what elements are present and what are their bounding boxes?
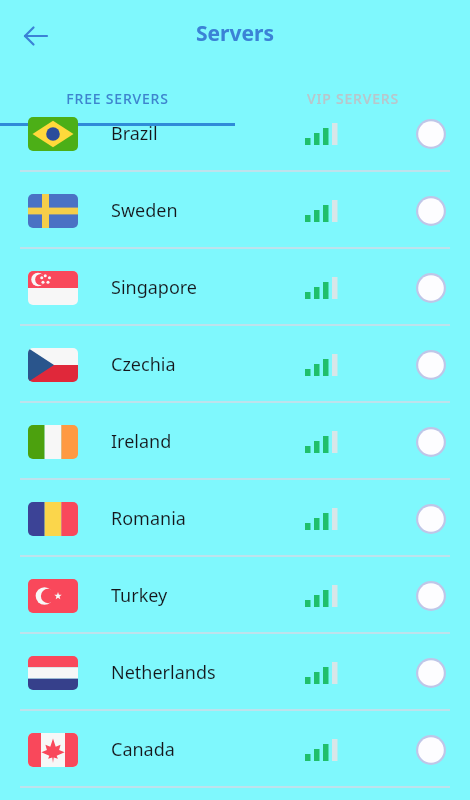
staticText: Singapore [111, 275, 198, 300]
staticText: Sweden [111, 198, 178, 223]
button[interactable]: FREE SERVERS [0, 70, 235, 126]
button[interactable]: Sweden [0, 172, 470, 249]
staticText: Servers [196, 19, 274, 48]
staticText: Romania [111, 506, 186, 531]
staticText: Ireland [111, 429, 172, 454]
button[interactable]: Select Czechia [416, 350, 446, 380]
button[interactable]: Select Singapore [416, 273, 446, 303]
button[interactable]: Select Romania [416, 504, 446, 534]
button[interactable]: Select Brazil [416, 119, 446, 149]
button[interactable]: Select Turkey [416, 581, 446, 611]
button[interactable]: Select Netherlands [416, 658, 446, 688]
button[interactable]: Select Sweden [416, 196, 446, 226]
button[interactable]: Select Ireland [416, 427, 446, 457]
button[interactable]: Brazil [0, 95, 470, 172]
button[interactable]: VIP SERVERS [235, 70, 470, 126]
staticText: VIP SERVERS [307, 89, 399, 108]
button[interactable]: Back [16, 16, 56, 56]
button[interactable]: Ireland [0, 403, 470, 480]
staticText: FREE SERVERS [66, 89, 169, 108]
staticText: Brazil [111, 121, 158, 146]
staticText: Canada [111, 737, 175, 762]
button[interactable]: Singapore [0, 249, 470, 326]
button[interactable]: Romania [0, 480, 470, 557]
button[interactable]: Canada [0, 711, 470, 788]
staticText: Czechia [111, 352, 176, 377]
staticText: Netherlands [111, 660, 216, 685]
button[interactable]: Turkey [0, 557, 470, 634]
staticText: Turkey [111, 583, 168, 608]
button[interactable]: Netherlands [0, 634, 470, 711]
button[interactable]: Select Canada [416, 735, 446, 765]
button[interactable]: Czechia [0, 326, 470, 403]
